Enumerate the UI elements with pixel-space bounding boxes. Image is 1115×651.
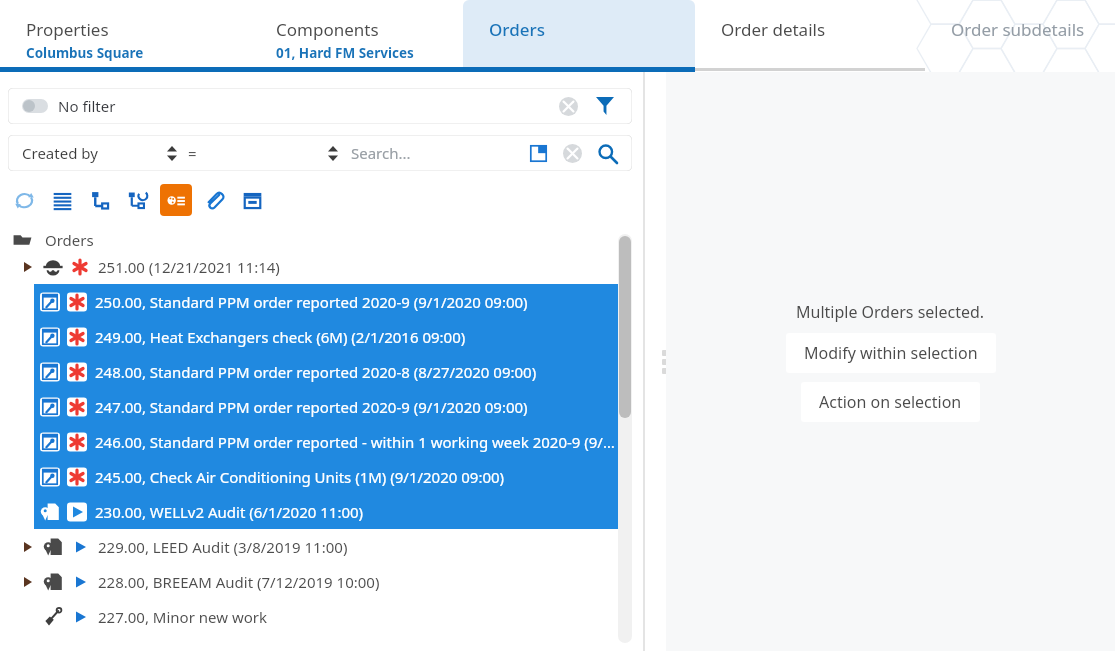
staticText: 246.00, Standard PPM order reported - wi… [95, 432, 615, 452]
button[interactable]: Refresh [8, 184, 40, 216]
staticText: 249.00, Heat Exchangers check (6M) (2/1/… [95, 327, 466, 347]
button[interactable]: Order subdetails [925, 0, 1115, 67]
staticText: 250.00, Standard PPM order reported 2020… [95, 292, 528, 312]
button[interactable]: Select operator [325, 145, 341, 161]
button[interactable]: Attachments [198, 184, 230, 216]
button[interactable]: 248.00, Standard PPM order reported 2020… [34, 354, 630, 389]
staticText: Multiple Orders selected. [796, 301, 985, 323]
staticText: Order details [721, 18, 826, 41]
button[interactable]: Properties [0, 0, 250, 67]
staticText: 229.00, LEED Audit (3/8/2019 11:00) [98, 537, 348, 557]
button[interactable]: 246.00, Standard PPM order reported - wi… [34, 424, 630, 459]
button[interactable]: Filter [592, 93, 618, 119]
button[interactable]: Select field [164, 145, 180, 161]
button[interactable]: 250.00, Standard PPM order reported 2020… [34, 284, 630, 319]
button[interactable]: Clear filter [556, 94, 580, 118]
button[interactable]: 227.00, Minor new work [0, 599, 640, 634]
staticText: 251.00 (12/21/2021 11:14) [98, 257, 280, 277]
button[interactable]: Pick value [526, 141, 550, 165]
staticText: 245.00, Check Air Conditioning Units (1M… [95, 467, 505, 487]
button[interactable]: Archive [236, 184, 268, 216]
button[interactable]: Resize panels [640, 72, 666, 651]
button[interactable]: Created by [22, 143, 164, 163]
staticText: 247.00, Standard PPM order reported 2020… [95, 397, 528, 417]
staticText: = [188, 143, 197, 163]
staticText: 228.00, BREEAM Audit (7/12/2019 10:00) [98, 572, 380, 592]
button[interactable]: 245.00, Check Air Conditioning Units (1M… [34, 459, 630, 494]
button[interactable]: Search [594, 140, 620, 166]
button[interactable]: List view [46, 184, 78, 216]
button[interactable]: Orders [463, 0, 695, 67]
staticText: Action on selection [819, 391, 962, 413]
button[interactable]: 228.00, BREEAM Audit (7/12/2019 10:00) [0, 564, 640, 599]
button[interactable]: Refresh tree [122, 184, 154, 216]
button[interactable]: Components [250, 0, 463, 67]
button[interactable]: Clear search [560, 141, 584, 165]
staticText: 248.00, Standard PPM order reported 2020… [95, 362, 537, 382]
staticText: Order subdetails [951, 18, 1085, 41]
staticText: Columbus Square [26, 44, 144, 62]
staticText: 227.00, Minor new work [98, 607, 267, 627]
button[interactable]: Orders [0, 230, 640, 249]
button[interactable]: Toggle filter [22, 99, 48, 113]
staticText: Orders [489, 18, 545, 41]
staticText: Created by [22, 143, 98, 163]
button[interactable]: 247.00, Standard PPM order reported 2020… [34, 389, 630, 424]
button[interactable]: Tree view [84, 184, 116, 216]
button[interactable]: Legend [160, 184, 192, 216]
button[interactable]: 251.00 (12/21/2021 11:14) [0, 249, 640, 284]
button[interactable]: Action on selection [801, 382, 980, 422]
staticText: 230.00, WELLv2 Audit (6/1/2020 11:00) [95, 502, 364, 522]
staticText: Modify within selection [804, 342, 978, 364]
staticText: No filter [58, 96, 116, 116]
button[interactable]: 230.00, WELLv2 Audit (6/1/2020 11:00) [34, 494, 630, 529]
button[interactable]: 249.00, Heat Exchangers check (6M) (2/1/… [34, 319, 630, 354]
staticText: Search... [351, 143, 411, 163]
button[interactable]: 229.00, LEED Audit (3/8/2019 11:00) [0, 529, 640, 564]
staticText: Properties [26, 18, 109, 41]
button[interactable]: Order details [695, 0, 925, 67]
button[interactable]: Modify within selection [786, 333, 996, 373]
staticText: 01, Hard FM Services [276, 44, 414, 62]
staticText: Components [276, 18, 379, 41]
staticText: Orders [45, 230, 94, 249]
